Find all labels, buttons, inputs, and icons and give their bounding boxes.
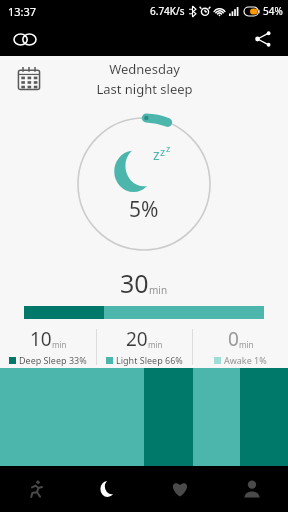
staticText: 30 — [120, 266, 149, 300]
button[interactable]: Share — [246, 22, 280, 56]
staticText: z — [153, 145, 160, 164]
staticText: 6.74K/s — [150, 4, 185, 18]
button[interactable]: Activity — [0, 466, 72, 512]
button[interactable]: Sleep — [72, 466, 144, 512]
staticText: 13:37 — [8, 4, 37, 19]
staticText: 54% — [263, 4, 283, 18]
staticText: Last night sleep — [96, 80, 193, 98]
button[interactable]: Link — [8, 22, 42, 56]
staticText: min — [149, 283, 168, 297]
button[interactable]: 0 — [193, 326, 288, 366]
button[interactable]: Profile — [216, 466, 288, 512]
staticText: z — [166, 142, 171, 154]
staticText: 5% — [129, 195, 159, 224]
button[interactable]: 20 — [97, 326, 192, 366]
staticText: 20 — [126, 326, 148, 352]
button[interactable]: Heart rate — [144, 466, 216, 512]
staticText: min — [52, 339, 67, 350]
button[interactable]: 10 — [0, 326, 96, 366]
staticText: Light Sleep 66% — [116, 354, 183, 366]
staticText: z — [160, 144, 166, 159]
staticText: Awake 1% — [224, 354, 267, 366]
staticText: Wednesday — [109, 60, 180, 78]
staticText: Deep Sleep 33% — [19, 354, 87, 366]
button[interactable]: Calendar — [14, 64, 44, 94]
staticText: 10 — [30, 326, 52, 352]
staticText: min — [148, 339, 163, 350]
staticText: min — [239, 339, 254, 350]
staticText: 0 — [228, 326, 239, 352]
